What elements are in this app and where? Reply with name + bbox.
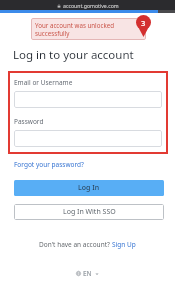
staticText: Your account was unlocked successfully [35, 21, 115, 37]
staticText: account.gomotive.com [63, 2, 119, 9]
staticText: Sign Up [112, 240, 136, 249]
staticText: Log In With SSO [63, 207, 116, 217]
staticText: Forgot your password? [14, 160, 84, 169]
button[interactable]: Sign Up [112, 240, 136, 249]
staticText: Email or Username [14, 78, 73, 87]
button[interactable]: Forgot your password? [14, 160, 84, 169]
button[interactable]: Log In With SSO [14, 204, 164, 220]
button[interactable] [14, 91, 162, 108]
button[interactable] [14, 130, 162, 147]
staticText: Password [14, 117, 44, 126]
staticText: EN [83, 269, 92, 278]
staticText: 3 [141, 18, 146, 28]
button[interactable]: Change language [73, 267, 102, 280]
staticText: Log In [78, 183, 100, 193]
button[interactable]: Log In [14, 180, 164, 196]
staticText: Log in to your account [13, 47, 134, 63]
staticText: Don't have an account? [39, 240, 112, 249]
